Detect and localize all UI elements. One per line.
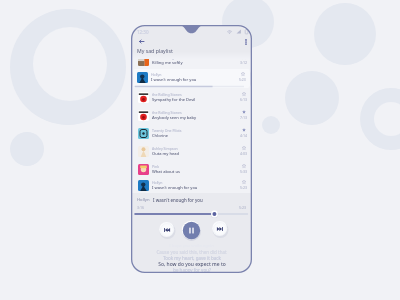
staticText: Pink: [152, 164, 160, 169]
staticText: I wasn't enough for you: [152, 185, 198, 190]
button[interactable]: Previous: [159, 222, 175, 238]
button[interactable]: the Rolling Stones: [131, 106, 252, 124]
staticText: 5:23: [239, 77, 246, 82]
staticText: What about us: [152, 169, 180, 174]
button[interactable]: Ashley Simpson: [131, 142, 252, 160]
button[interactable]: the Rolling Stones: [131, 88, 252, 106]
button[interactable]: Next: [212, 221, 228, 237]
staticText: 4:03: [240, 151, 248, 156]
staticText: Ashley Simpson: [152, 146, 178, 151]
staticText: Chlorine: [152, 133, 169, 138]
staticText: 12:30: [137, 29, 149, 35]
staticText: Took my heart, gave it back: [163, 255, 221, 261]
staticText: 6:13: [240, 97, 248, 102]
staticText: 7:13: [240, 115, 248, 120]
button[interactable]: Twenty One Pilots: [131, 124, 252, 142]
staticText: Sympathy for the Devil: [152, 97, 196, 102]
staticText: the Rolling Stones: [152, 92, 182, 97]
button[interactable]: Rebecca Ferguson: [131, 51, 252, 69]
staticText: 4:14: [240, 133, 248, 138]
staticText: I wasn't enough for you: [151, 77, 197, 82]
staticText: So, how do you expect me to: [158, 261, 226, 268]
staticText: Outa my head: [152, 151, 180, 156]
staticText: Hollyn: [137, 197, 150, 203]
button[interactable]: Back: [135, 36, 147, 46]
button[interactable]: Hollyn: [133, 69, 250, 88]
button[interactable]: Pause: [182, 221, 201, 240]
staticText: Cause you said this, then did that: [156, 249, 227, 255]
staticText: My sad playlist: [137, 47, 173, 54]
staticText: I wasn't enough for you: [153, 197, 203, 203]
staticText: Twenty One Pilots: [152, 128, 182, 133]
staticText: 3:16: [137, 205, 145, 210]
button[interactable]: Pink: [131, 160, 252, 178]
staticText: Hollyn: [152, 180, 163, 185]
staticText: Anybody seen my baby: [152, 115, 197, 120]
staticText: Rebecca Ferguson: [152, 55, 182, 60]
button[interactable]: More options: [240, 36, 251, 48]
staticText: Hollyn: [151, 72, 162, 77]
staticText: be happy for you?: [173, 267, 211, 273]
staticText: 5:23: [240, 185, 248, 190]
staticText: 5:33: [240, 169, 248, 174]
staticText: the Rolling Stones: [152, 110, 182, 115]
staticText: 3:12: [240, 60, 248, 65]
staticText: Killing me softly: [152, 60, 183, 65]
staticText: 5:23: [239, 205, 247, 210]
button[interactable]: Hollyn: [131, 178, 252, 192]
